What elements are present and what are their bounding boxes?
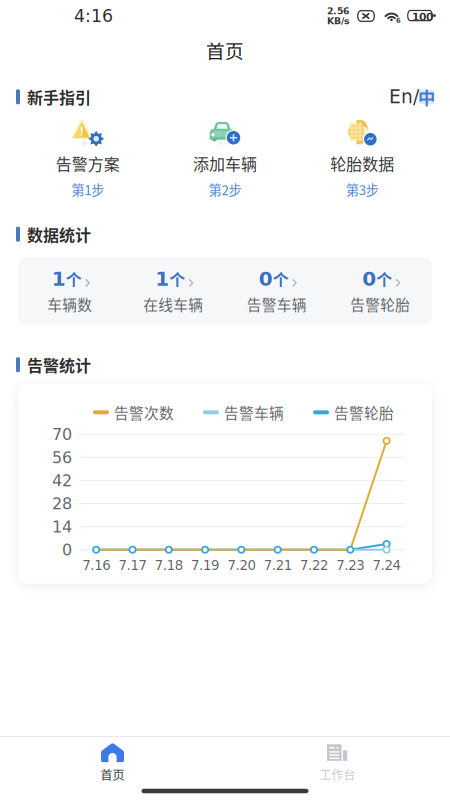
staticText: 4:16 (74, 6, 113, 26)
staticText: 告警轮胎 (334, 402, 394, 423)
staticText: 中 (418, 84, 435, 109)
staticText: 0 (62, 541, 72, 559)
staticText: 100 (412, 11, 433, 23)
staticText: 第2步 (208, 180, 241, 199)
staticText: 轮胎数据 (330, 152, 394, 175)
staticText: 2.56 (327, 6, 349, 16)
button[interactable]: 告警方案 (19, 119, 156, 199)
staticText: 工作台 (319, 766, 355, 783)
staticText: 7.20 (227, 558, 255, 573)
staticText: 告警车辆 (247, 293, 307, 315)
staticText: En/ (389, 86, 419, 108)
button[interactable]: 1 (18, 267, 121, 315)
button[interactable]: 轮胎数据 (294, 119, 431, 199)
button[interactable]: 添加车辆 (156, 119, 294, 199)
staticText: 个 (66, 267, 82, 290)
staticText: 1 (52, 267, 66, 290)
staticText: 28 (52, 494, 72, 513)
staticText: 7.18 (155, 558, 183, 573)
button[interactable]: En/ (389, 86, 434, 108)
staticText: 告警轮胎 (350, 293, 410, 315)
staticText: 7.22 (300, 558, 328, 573)
staticText: 56 (52, 448, 72, 467)
staticText: 0 (362, 267, 376, 290)
staticText: 个 (376, 267, 392, 290)
staticText: 首页 (206, 36, 244, 63)
staticText: 首页 (100, 766, 124, 783)
staticText: 0 (259, 267, 273, 290)
staticText: 1 (155, 267, 169, 290)
button[interactable]: 首页 (0, 743, 225, 783)
staticText: 添加车辆 (193, 152, 257, 175)
button[interactable]: 0 (225, 267, 328, 315)
staticText: 14 (52, 518, 72, 536)
staticText: 70 (52, 425, 72, 444)
staticText: 告警车辆 (224, 402, 284, 423)
staticText: 6 (396, 16, 401, 24)
staticText: 个 (273, 267, 289, 290)
button[interactable]: 1 (121, 267, 225, 315)
staticText: 7.19 (191, 558, 219, 573)
button[interactable]: 工作台 (225, 743, 450, 783)
staticText: 7.21 (264, 558, 292, 573)
staticText: 新手指引 (27, 85, 91, 108)
staticText: 第1步 (71, 180, 104, 199)
staticText: 告警次数 (114, 402, 174, 423)
staticText: 在线车辆 (143, 293, 203, 315)
staticText: 数据统计 (27, 223, 91, 246)
staticText: 7.23 (336, 558, 364, 573)
staticText: 42 (52, 471, 72, 490)
staticText: 个 (169, 267, 185, 290)
staticText: 车辆数 (47, 293, 92, 315)
staticText: 7.16 (82, 558, 110, 573)
staticText: 告警统计 (27, 353, 91, 376)
staticText: KB/s (327, 15, 350, 26)
staticText: 第3步 (346, 180, 379, 199)
staticText: 告警方案 (56, 152, 120, 175)
staticText: 7.24 (373, 558, 401, 573)
button[interactable]: 0 (328, 267, 432, 315)
staticText: 7.17 (118, 558, 146, 573)
